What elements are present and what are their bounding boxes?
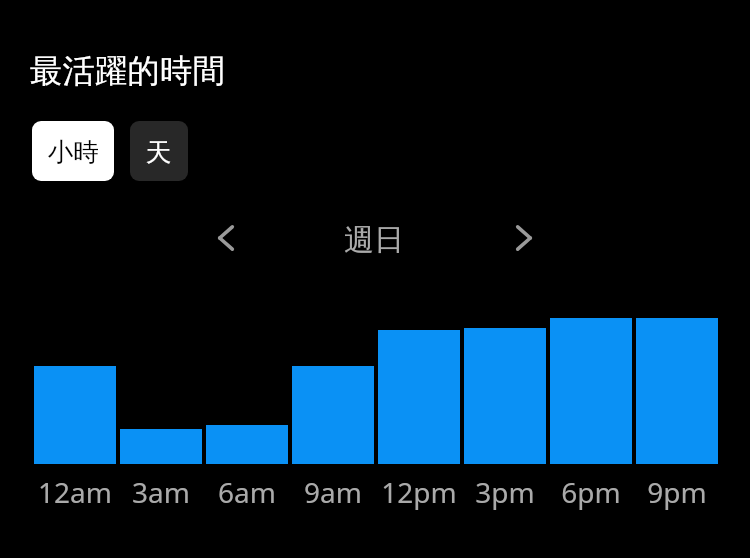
- staticText: 小時: [48, 136, 99, 168]
- button[interactable]: Next day: [496, 210, 552, 266]
- staticText: 6pm: [561, 473, 621, 511]
- staticText: 最活躍的時間: [30, 51, 225, 92]
- staticText: 12am: [38, 473, 112, 511]
- staticText: 3pm: [475, 473, 535, 511]
- staticText: 9am: [304, 473, 362, 511]
- staticText: 9pm: [647, 473, 707, 511]
- staticText: 6am: [218, 473, 276, 511]
- staticText: 12pm: [381, 473, 457, 511]
- button[interactable]: 週日: [274, 212, 474, 268]
- button[interactable]: Previous day: [198, 210, 254, 266]
- staticText: 週日: [344, 221, 404, 259]
- staticText: 天: [146, 136, 172, 168]
- button[interactable]: 天: [130, 121, 188, 181]
- staticText: 3am: [132, 473, 190, 511]
- button[interactable]: 小時: [32, 121, 114, 181]
